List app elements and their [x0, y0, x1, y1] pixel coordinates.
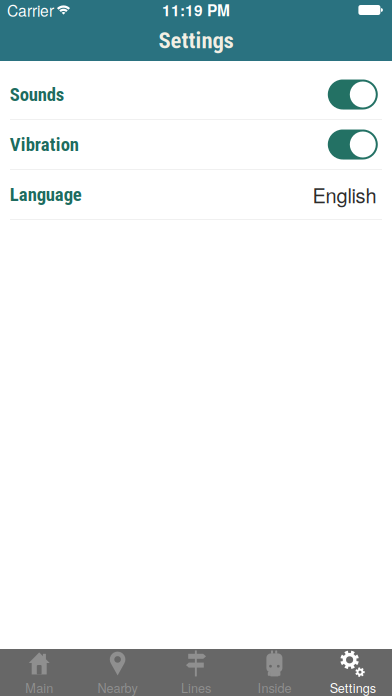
staticText: Main	[25, 678, 53, 696]
staticText: Carrier	[7, 0, 54, 21]
staticText: Sounds	[10, 84, 64, 105]
staticText: Nearby	[98, 678, 138, 696]
staticText: Vibration	[10, 134, 79, 155]
button[interactable]: Lines	[157, 649, 235, 696]
button[interactable]: Nearby	[78, 649, 157, 696]
staticText: Settings	[330, 678, 376, 696]
staticText: Language	[10, 184, 82, 205]
staticText: Inside	[257, 678, 291, 696]
button[interactable]: Language	[0, 170, 392, 219]
button[interactable]: Main	[0, 649, 78, 696]
button[interactable]: Settings	[314, 649, 392, 696]
staticText: Lines	[181, 678, 211, 696]
staticText: Settings	[158, 27, 233, 54]
staticText: English	[312, 180, 376, 209]
staticText: 11:19 PM	[162, 0, 230, 21]
button[interactable]: Sounds	[0, 70, 392, 119]
button[interactable]: Vibration	[0, 120, 392, 169]
button[interactable]: Inside	[235, 649, 314, 696]
